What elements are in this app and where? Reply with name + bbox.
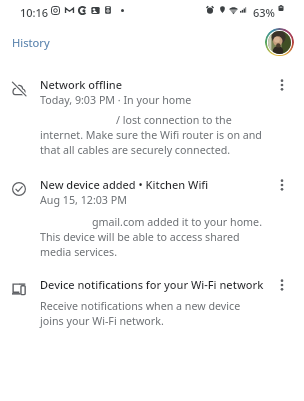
staticText: History [12,35,50,50]
staticText: This device will be able to access share… [40,230,266,259]
staticText: Device notifications for your Wi-Fi netw… [40,277,264,292]
staticText: 10:16 [20,5,49,20]
staticText: New device added • Kitchen Wifi [40,177,209,192]
staticText: Network offline [40,77,123,92]
button[interactable]: History [12,35,50,50]
staticText: gmail.com added it to your home. [92,215,262,230]
other: New device added [12,182,26,196]
staticText: internet. Make sure the Wifi router is o… [40,128,266,157]
button[interactable]: More options [272,75,292,95]
button[interactable]: New device added [0,170,304,266]
button[interactable]: More options [272,275,292,295]
staticText: Receive notifications when a new device … [40,299,266,328]
other: Device notifications [12,283,26,297]
staticText: Today, 9:03 PM · In your home [40,93,192,108]
staticText: Aug 15, 12:03 PM [40,193,127,208]
staticText: / lost connection to the [116,113,232,128]
button[interactable]: Account [265,28,294,56]
button[interactable]: Network offline [0,70,304,166]
staticText: 63% [253,5,275,20]
other: Network offline [12,82,26,96]
button[interactable]: More options [272,175,292,195]
button[interactable]: Device notifications [0,270,304,338]
